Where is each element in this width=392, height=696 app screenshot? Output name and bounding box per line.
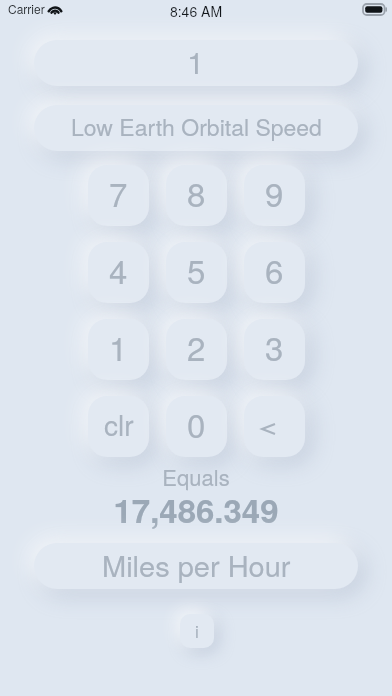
staticText: 8:46 AM: [0, 1, 392, 21]
button[interactable]: 1: [88, 319, 149, 380]
staticText: 0: [187, 400, 206, 447]
staticText: 1: [187, 38, 205, 82]
staticText: Equals: [0, 461, 392, 493]
staticText: Miles per Hour: [102, 544, 291, 586]
button[interactable]: 5: [166, 242, 227, 303]
staticText: 17,486.349: [0, 486, 392, 533]
staticText: 2: [187, 323, 206, 370]
staticText: 9: [265, 169, 284, 216]
staticText: 3: [265, 323, 284, 370]
staticText: 6: [265, 246, 284, 293]
staticText: i: [195, 618, 199, 642]
staticText: 5: [187, 246, 206, 293]
staticText: 7: [109, 169, 128, 216]
button[interactable]: Low Earth Orbital Speed: [34, 105, 358, 151]
button[interactable]: 0: [166, 396, 227, 457]
button[interactable]: 1: [34, 40, 358, 86]
button[interactable]: 2: [166, 319, 227, 380]
staticText: 1: [109, 323, 128, 370]
button[interactable]: Backspace: [244, 396, 305, 457]
staticText: 4: [109, 246, 128, 293]
button[interactable]: 9: [244, 165, 305, 226]
staticText: 8: [187, 169, 206, 216]
staticText: Low Earth Orbital Speed: [71, 110, 322, 143]
staticText: clr: [104, 404, 134, 444]
button[interactable]: 8: [166, 165, 227, 226]
button[interactable]: 3: [244, 319, 305, 380]
button[interactable]: 4: [88, 242, 149, 303]
staticText: Carrier: [8, 0, 45, 17]
button[interactable]: Info: [180, 614, 214, 648]
button[interactable]: Miles per Hour: [34, 543, 358, 589]
button[interactable]: 6: [244, 242, 305, 303]
button[interactable]: 7: [88, 165, 149, 226]
button[interactable]: clr: [88, 396, 149, 457]
